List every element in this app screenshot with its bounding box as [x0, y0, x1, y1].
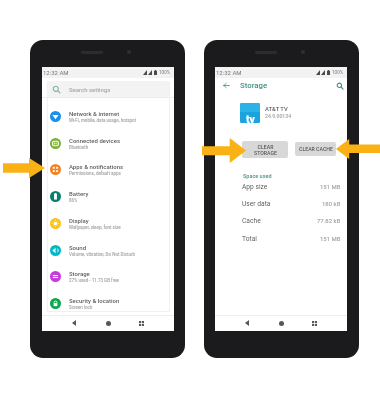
staticText: Search settings [69, 86, 111, 93]
staticText: Cache [242, 217, 261, 225]
staticText: Space used [243, 173, 272, 179]
staticText: tv [246, 113, 255, 123]
staticText: Connected devices [69, 137, 121, 144]
button[interactable]: Back [220, 79, 233, 92]
button[interactable]: User data [215, 195, 347, 212]
button[interactable]: CLEAR STORAGE [242, 141, 288, 158]
staticText: Sound [69, 244, 87, 251]
staticText: Wallpaper, sleep, font size [69, 225, 121, 230]
staticText: Display [69, 217, 89, 224]
staticText: Battery [69, 190, 89, 197]
button[interactable]: Sound [42, 237, 174, 264]
staticText: Total [242, 235, 257, 243]
staticText: 100% [332, 70, 344, 75]
button[interactable]: Total [215, 230, 347, 247]
staticText: Wi-Fi, mobile, data usage, hotspot [69, 118, 137, 123]
button[interactable]: Recent apps [133, 315, 149, 331]
button[interactable]: Recent apps [306, 315, 322, 331]
button[interactable]: App size [215, 178, 347, 195]
button[interactable]: Search settings [47, 81, 169, 97]
button[interactable]: Battery [42, 183, 174, 210]
button[interactable]: Home [100, 315, 116, 331]
staticText: Storage [69, 270, 90, 277]
button[interactable]: Back [239, 315, 255, 331]
staticText: Volume, vibration, Do Not Disturb [69, 252, 135, 257]
staticText: AT&T TV [265, 106, 288, 113]
button[interactable]: CLEAR CACHE [295, 142, 336, 156]
staticText: App size [242, 183, 268, 191]
staticText: CLEAR CACHE [299, 146, 333, 152]
button[interactable]: Network & internet [42, 103, 174, 130]
staticText: 86% [69, 198, 78, 203]
staticText: 151 MB [320, 183, 341, 190]
button[interactable]: Search [333, 79, 346, 92]
staticText: 77.82 kB [317, 217, 341, 224]
button[interactable]: Cache [215, 212, 347, 229]
staticText: Permissions, default apps [69, 171, 121, 176]
button[interactable]: Home [273, 315, 289, 331]
button[interactable]: Connected devices [42, 130, 174, 157]
button[interactable]: Back [66, 315, 82, 331]
staticText: Bluetooth [69, 145, 89, 150]
staticText: 151 MB [320, 235, 341, 242]
button[interactable]: Apps & notifications [42, 156, 174, 183]
staticText: Network & internet [69, 110, 120, 117]
staticText: User data [242, 200, 271, 208]
button[interactable]: Security & location [42, 290, 174, 317]
staticText: 24.9.00134 [265, 113, 292, 119]
staticText: 100% [159, 70, 171, 75]
staticText: 27% used - 11.73 GB free [69, 278, 119, 283]
button[interactable]: Display [42, 210, 174, 237]
staticText: Security & location [69, 297, 120, 304]
staticText: 12:32 AM [43, 69, 69, 76]
staticText: CLEAR STORAGE [254, 144, 277, 156]
staticText: 180 kB [322, 200, 341, 207]
staticText: Screen lock [69, 305, 93, 310]
staticText: 12:32 AM [216, 69, 242, 76]
button[interactable]: Storage [42, 263, 174, 290]
staticText: Storage [240, 81, 268, 90]
staticText: Apps & notifications [69, 163, 124, 170]
